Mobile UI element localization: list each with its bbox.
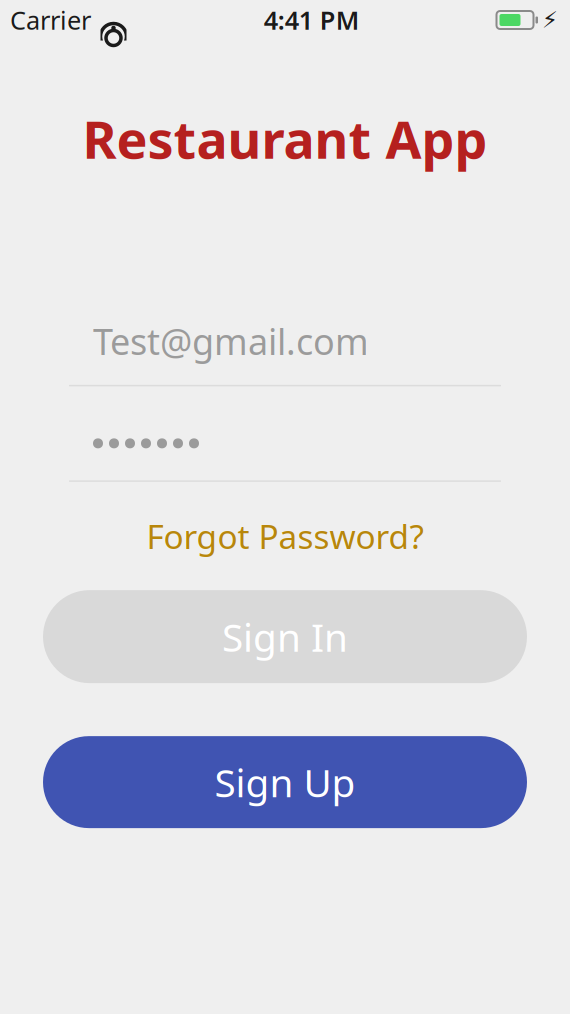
staticText: Forgot Password?: [146, 514, 423, 558]
staticText: Carrier: [10, 3, 91, 37]
staticText: 4:41 PM: [264, 3, 360, 37]
button[interactable]: Sign In: [43, 590, 527, 683]
button[interactable]: Forgot Password?: [136, 508, 433, 564]
button[interactable]: Sign Up: [43, 736, 527, 828]
staticText: Test@gmail.com: [93, 317, 369, 365]
staticText: Sign In: [222, 611, 348, 662]
staticText: Restaurant App: [82, 104, 487, 173]
staticText: Sign Up: [214, 756, 355, 808]
staticText: ⚡︎: [542, 7, 558, 33]
